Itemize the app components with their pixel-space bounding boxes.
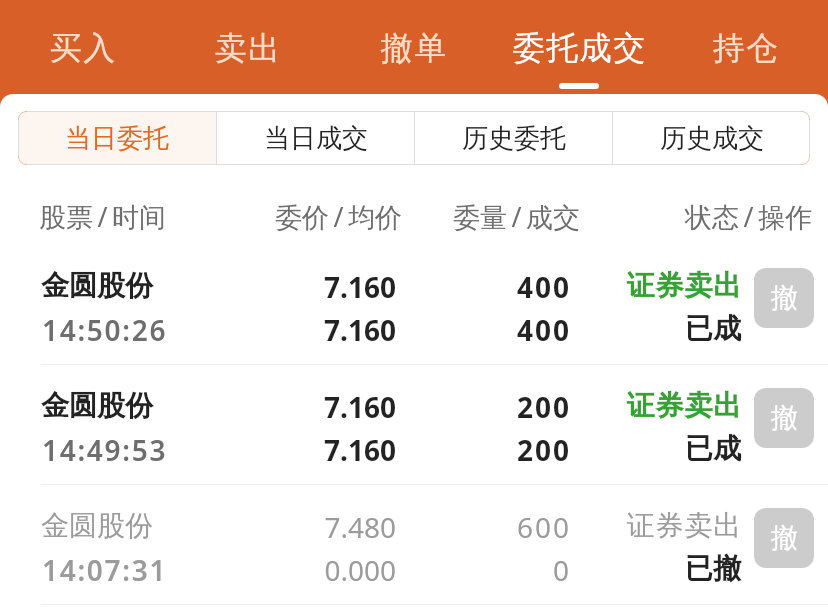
staticText: 卖出	[214, 28, 281, 68]
staticText: 金圆股份	[41, 388, 153, 423]
button[interactable]: 当日委托	[18, 111, 216, 165]
staticText: 证券卖出	[626, 268, 742, 303]
staticText: 证券卖出	[626, 508, 742, 543]
staticText: 撤	[771, 521, 798, 555]
staticText: 0.000	[324, 551, 396, 589]
staticText: 委托成交	[512, 28, 646, 68]
staticText: 0	[552, 551, 571, 589]
staticText: 买入	[49, 28, 116, 68]
staticText: 7.480	[324, 508, 396, 546]
staticText: 400	[516, 268, 571, 306]
staticText: 7.160	[324, 268, 396, 306]
staticText: 委价 / 均价	[274, 198, 402, 235]
staticText: 历史委托	[462, 122, 566, 155]
staticText: 撤	[771, 401, 798, 435]
staticText: 7.160	[324, 388, 396, 426]
button[interactable]: 卖出	[165, 0, 330, 94]
staticText: 股票 / 时间	[39, 198, 167, 235]
staticText: 200	[516, 388, 571, 426]
staticText: 历史成交	[660, 122, 764, 155]
staticText: 14:50:26	[42, 311, 168, 349]
staticText: 当日成交	[264, 122, 368, 155]
button[interactable]: 历史成交	[613, 111, 810, 165]
staticText: 已成	[685, 311, 741, 346]
staticText: 400	[516, 311, 571, 349]
staticText: 证券卖出	[626, 388, 742, 423]
staticText: 14:49:53	[42, 431, 168, 469]
staticText: 200	[516, 431, 571, 469]
staticText: 撤单	[380, 28, 447, 68]
button[interactable]: 买入	[0, 0, 165, 94]
staticText: 已成	[685, 431, 741, 466]
staticText: 委量 / 成交	[452, 198, 580, 235]
staticText: 金圆股份	[41, 268, 153, 303]
button[interactable]: 撤	[754, 388, 814, 448]
button[interactable]: 撤	[754, 268, 814, 328]
staticText: 金圆股份	[41, 508, 153, 543]
staticText: 7.160	[324, 311, 396, 349]
staticText: 当日委托	[65, 122, 169, 155]
button[interactable]: 委托成交	[496, 0, 662, 94]
button[interactable]: 撤单	[330, 0, 496, 94]
button[interactable]: 撤	[754, 508, 814, 568]
button[interactable]: 历史委托	[415, 111, 612, 165]
button[interactable]: 持仓	[662, 0, 828, 94]
button[interactable]: 当日成交	[217, 111, 414, 165]
staticText: 已撤	[685, 551, 741, 586]
staticText: 撤	[771, 281, 798, 315]
staticText: 14:07:31	[42, 551, 168, 589]
staticText: 持仓	[712, 28, 779, 68]
staticText: 状态 / 操作	[684, 198, 812, 235]
staticText: 7.160	[324, 431, 396, 469]
staticText: 600	[516, 508, 571, 546]
